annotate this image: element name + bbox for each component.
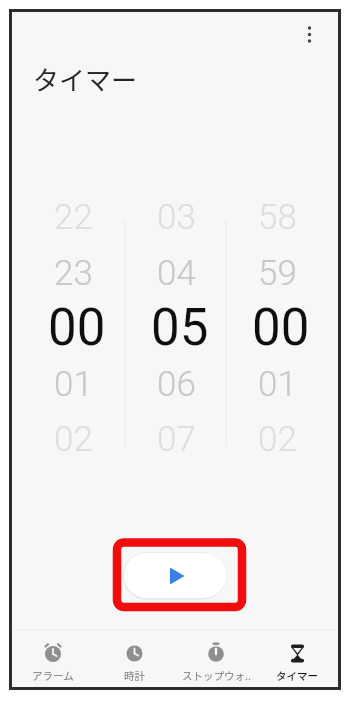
staticText: 00 (252, 298, 310, 358)
staticText: 05 (151, 298, 209, 358)
staticText: 00 (48, 298, 106, 358)
staticText: 07 (157, 419, 196, 460)
button[interactable]: ストップウォ.. (176, 634, 256, 684)
staticText: 22 (54, 197, 93, 238)
staticText: 01 (54, 364, 93, 405)
staticText: 時計 (124, 668, 145, 683)
staticText: 04 (157, 253, 196, 294)
staticText: 59 (258, 253, 297, 294)
staticText: タイマー (276, 668, 318, 683)
staticText: アラーム (32, 668, 74, 683)
staticText: 06 (157, 364, 196, 405)
staticText: 02 (54, 419, 93, 460)
button[interactable] (297, 22, 321, 46)
staticText: 03 (157, 197, 196, 238)
staticText: タイマー (33, 60, 138, 98)
button[interactable]: タイマー (257, 634, 337, 684)
button[interactable]: 時計 (94, 634, 174, 684)
staticText: 23 (54, 253, 93, 294)
staticText: 58 (258, 197, 297, 238)
staticText: ストップウォ.. (182, 668, 251, 683)
staticText: 02 (258, 419, 297, 460)
button[interactable] (124, 553, 226, 598)
staticText: 01 (258, 364, 297, 405)
button[interactable]: アラーム (13, 634, 93, 684)
